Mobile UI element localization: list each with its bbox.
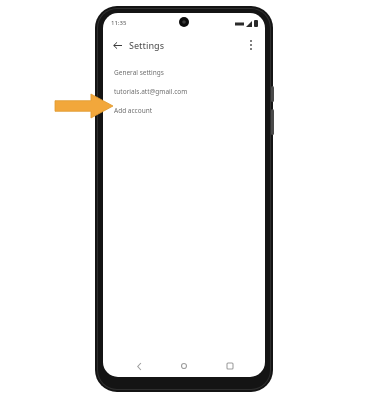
button[interactable]: Back [129,356,149,376]
staticText: tutorials.att@gmail.com [114,87,188,96]
staticText: Settings [129,39,165,51]
button[interactable]: Add account [103,101,265,120]
button[interactable]: Home [174,356,194,376]
staticText: General settings [114,68,164,77]
button[interactable]: More options [243,37,259,53]
button[interactable]: Recent apps [220,356,240,376]
staticText: Add account [114,106,153,115]
button[interactable]: General settings [103,63,265,82]
staticText: 11:35 [111,19,127,27]
button[interactable]: Back [109,37,125,53]
button[interactable]: tutorials.att@gmail.com [103,82,265,101]
